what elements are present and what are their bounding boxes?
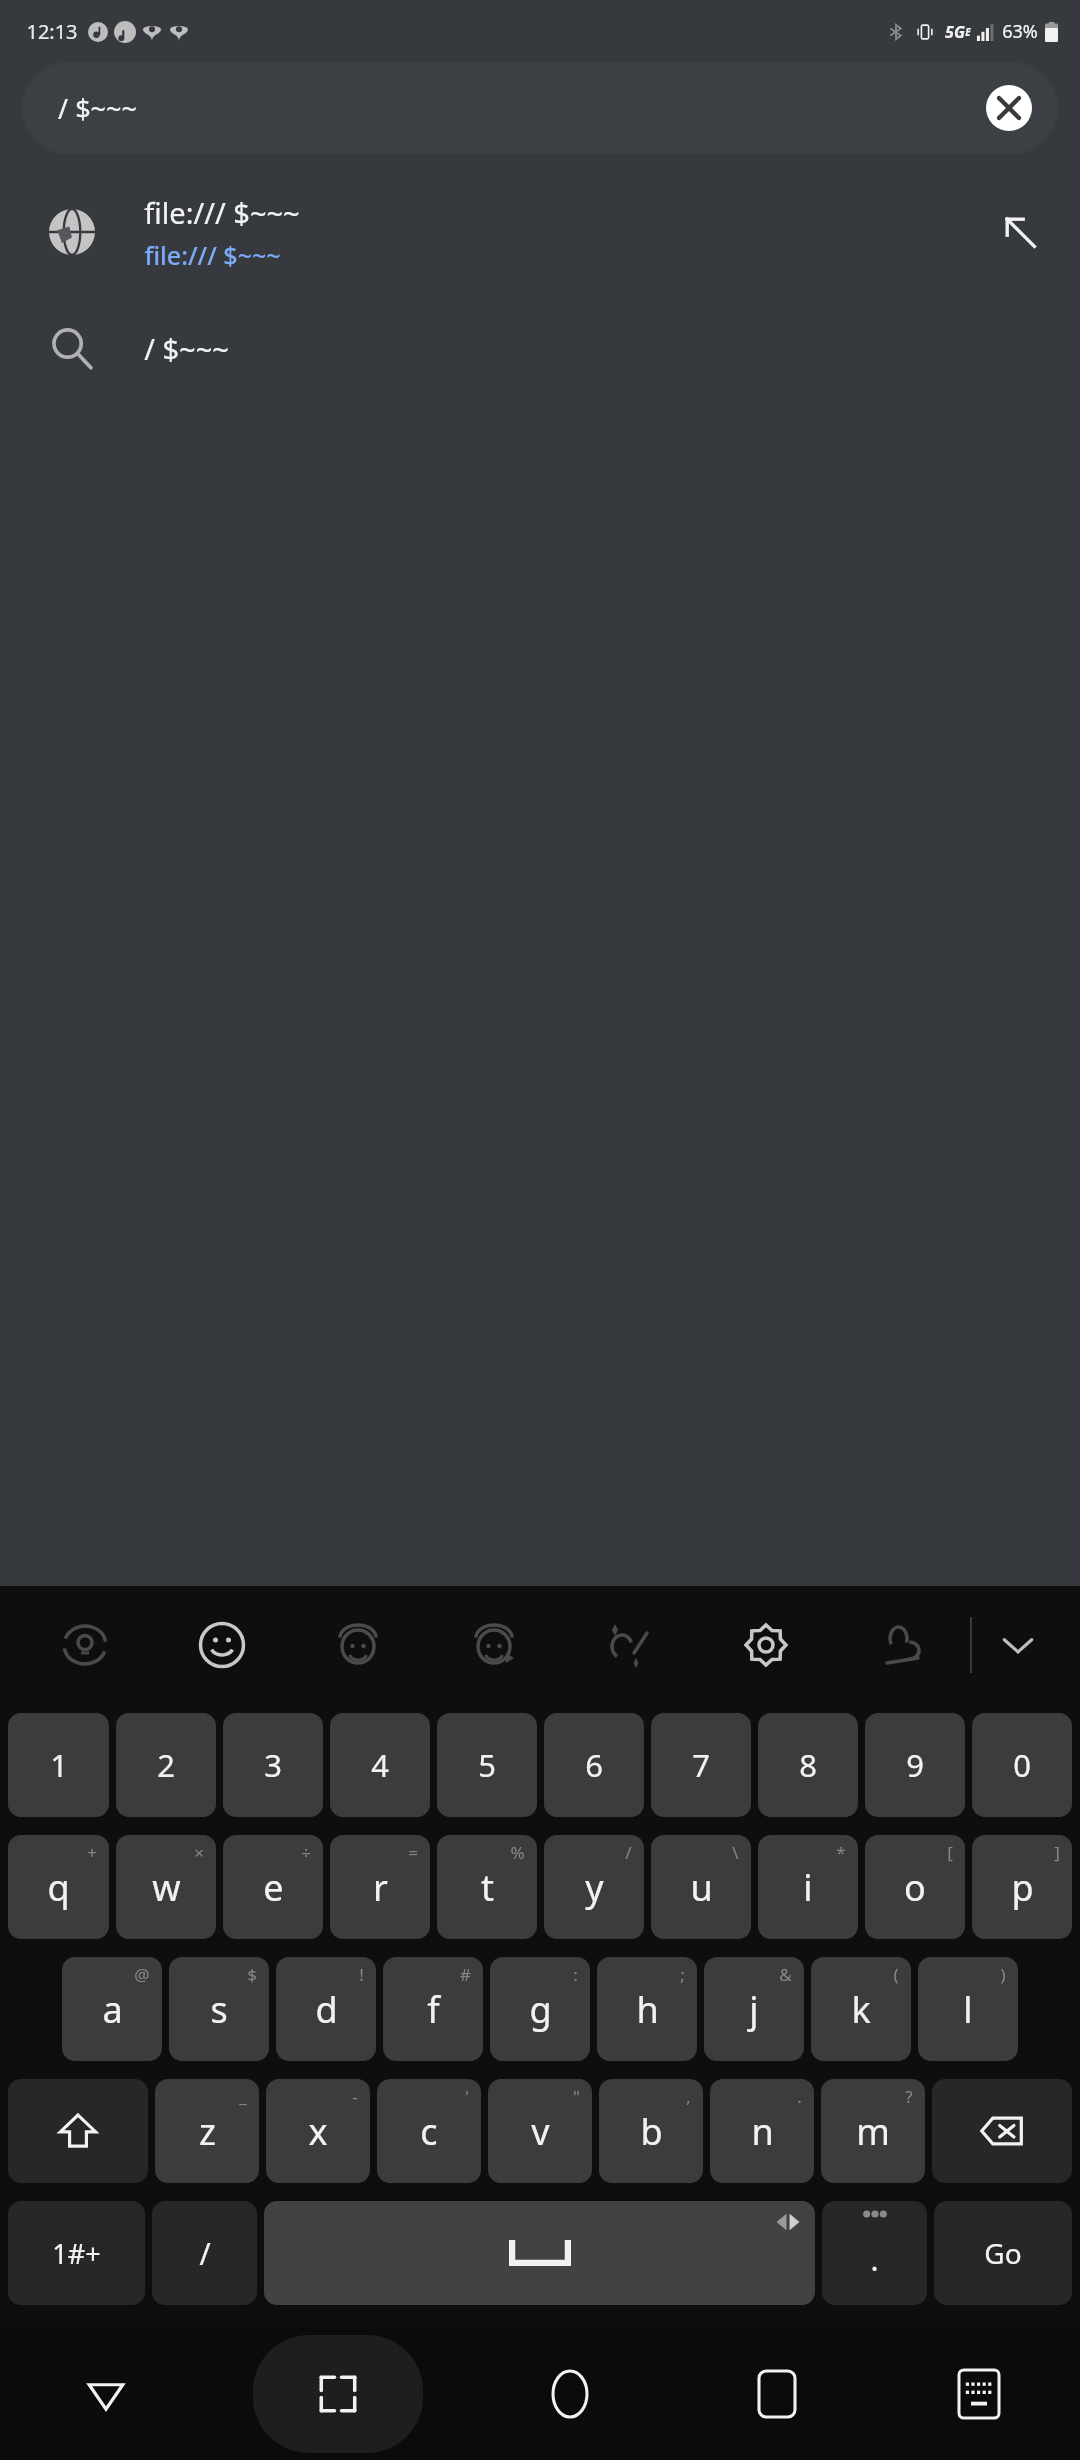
button[interactable]: Collapse toolbar	[972, 1586, 1064, 1704]
button[interactable]: 6	[544, 1713, 644, 1817]
button[interactable]: 2	[116, 1713, 216, 1817]
button[interactable]: Edit suggestion	[960, 172, 1080, 292]
staticText: 7	[692, 1744, 710, 1786]
button[interactable]: Emoji	[153, 1586, 290, 1704]
button[interactable]: ?	[821, 2079, 925, 2183]
button[interactable]: *	[758, 1835, 858, 1939]
staticText: a	[102, 1985, 123, 2034]
button[interactable]: )	[918, 1957, 1018, 2061]
staticText: g	[529, 1985, 552, 2034]
button[interactable]: 5	[437, 1713, 537, 1817]
button[interactable]: 8	[758, 1713, 858, 1817]
staticText: ,	[686, 2085, 691, 2108]
button[interactable]: 3	[223, 1713, 323, 1817]
button[interactable]: GIF	[426, 1586, 562, 1704]
button[interactable]: "	[488, 2079, 592, 2183]
button[interactable]: -	[266, 2079, 370, 2183]
staticText: )	[1000, 1963, 1006, 1986]
staticText: / $~~~	[58, 90, 137, 127]
button[interactable]: Go	[934, 2201, 1072, 2305]
button[interactable]: /	[152, 2201, 257, 2305]
button[interactable]: :	[490, 1957, 590, 2061]
staticText: 1#+	[52, 2235, 101, 2272]
button[interactable]: Space	[264, 2201, 815, 2305]
staticText: d	[315, 1985, 338, 2034]
button[interactable]: 4	[330, 1713, 430, 1817]
button[interactable]: Backspace	[932, 2079, 1072, 2183]
button[interactable]: Translate	[16, 1586, 153, 1704]
button[interactable]: (	[811, 1957, 911, 2061]
button[interactable]: '	[377, 2079, 481, 2183]
button[interactable]: ×	[116, 1835, 216, 1939]
staticText: *	[836, 1841, 846, 1864]
staticText: .	[870, 2239, 879, 2280]
button[interactable]: .	[710, 2079, 814, 2183]
staticText: i	[803, 1863, 813, 1912]
button[interactable]: %	[437, 1835, 537, 1939]
button[interactable]: 1	[8, 1713, 109, 1817]
button[interactable]: Recent apps	[717, 2328, 837, 2460]
staticText: l	[963, 1985, 973, 2034]
button[interactable]: \	[651, 1835, 751, 1939]
button[interactable]: [	[865, 1835, 965, 1939]
button[interactable]: Shift	[8, 2079, 148, 2183]
staticText: %	[510, 1841, 525, 1864]
button[interactable]: 7	[651, 1713, 751, 1817]
button[interactable]: $	[169, 1957, 269, 2061]
staticText: /	[199, 2233, 211, 2274]
button[interactable]: 0	[972, 1713, 1072, 1817]
staticText: v	[531, 2107, 550, 2156]
staticText: f	[427, 1985, 440, 2034]
staticText: c	[420, 2107, 438, 2156]
button[interactable]: /	[544, 1835, 644, 1939]
staticText: w	[152, 1863, 181, 1912]
staticText: ]	[1054, 1841, 1060, 1864]
button[interactable]: Settings	[698, 1586, 834, 1704]
button[interactable]: / $~~~	[0, 292, 1080, 404]
button[interactable]: &	[704, 1957, 804, 2061]
staticText: h	[636, 1985, 659, 2034]
staticText: (	[893, 1963, 899, 1986]
staticText: _	[239, 2085, 247, 2108]
button[interactable]: Draw	[834, 1586, 970, 1704]
staticText: file:/// $~~~	[144, 193, 300, 232]
button[interactable]: Switch keyboard	[924, 2328, 1034, 2460]
button[interactable]: 1#+	[8, 2201, 145, 2305]
button[interactable]: Hide keyboard	[46, 2328, 166, 2460]
staticText: #	[460, 1963, 471, 1986]
button[interactable]: @	[62, 1957, 162, 2061]
button[interactable]: Home	[510, 2328, 630, 2460]
button[interactable]: Clear search	[986, 85, 1032, 131]
staticText: +	[87, 1841, 97, 1864]
button[interactable]: 9	[865, 1713, 965, 1817]
staticText: z	[199, 2107, 216, 2156]
button[interactable]: ]	[972, 1835, 1072, 1939]
staticText: b	[640, 2107, 663, 2156]
staticText: &	[779, 1963, 792, 1986]
button[interactable]: Screenshot	[253, 2335, 423, 2453]
button[interactable]: !	[276, 1957, 376, 2061]
staticText: p	[1011, 1863, 1034, 1912]
staticText: \	[732, 1841, 739, 1864]
button[interactable]: ÷	[223, 1835, 323, 1939]
staticText: =	[408, 1841, 418, 1864]
staticText: 1	[50, 1744, 68, 1786]
staticText: 6	[585, 1744, 603, 1786]
staticText: '	[465, 2085, 469, 2108]
staticText: !	[359, 1963, 364, 1986]
staticText: m	[856, 2107, 890, 2156]
button[interactable]: / $~~~	[22, 62, 1058, 154]
button[interactable]: +	[8, 1835, 109, 1939]
button[interactable]: Magic	[562, 1586, 698, 1704]
button[interactable]: #	[383, 1957, 483, 2061]
button[interactable]: Sticker	[290, 1586, 426, 1704]
button[interactable]: ;	[597, 1957, 697, 2061]
button[interactable]: ,	[599, 2079, 703, 2183]
button[interactable]: _	[155, 2079, 259, 2183]
staticText: o	[904, 1863, 926, 1912]
button[interactable]: .	[822, 2201, 927, 2305]
button[interactable]: file:/// $~~~	[0, 172, 1080, 292]
staticText: y	[585, 1863, 604, 1912]
staticText: [	[947, 1841, 953, 1864]
button[interactable]: =	[330, 1835, 430, 1939]
